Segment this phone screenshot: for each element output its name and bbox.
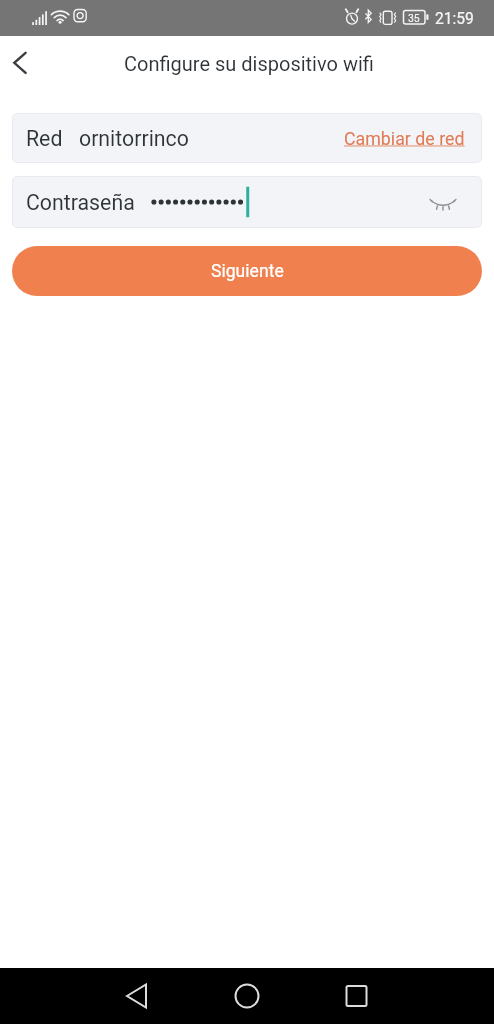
button[interactable]: Back (109, 968, 165, 1024)
staticText: 21:59 (435, 10, 474, 28)
button[interactable]: Recent apps (329, 968, 385, 1024)
button[interactable]: Home (219, 968, 275, 1024)
button[interactable]: Siguiente (12, 246, 482, 296)
staticText: Contraseña (26, 190, 135, 215)
staticText: Red (26, 126, 63, 151)
staticText: Siguiente (211, 261, 284, 282)
staticText: ornitorrinco (79, 126, 189, 151)
staticText: 35 (408, 12, 420, 24)
staticText: Configure su dispositivo wifi (124, 52, 374, 75)
button[interactable]: Back (0, 36, 40, 90)
button[interactable]: Show password (421, 176, 465, 228)
button[interactable]: Cambiar de red (344, 128, 465, 149)
staticText: Cambiar de red (344, 128, 465, 149)
